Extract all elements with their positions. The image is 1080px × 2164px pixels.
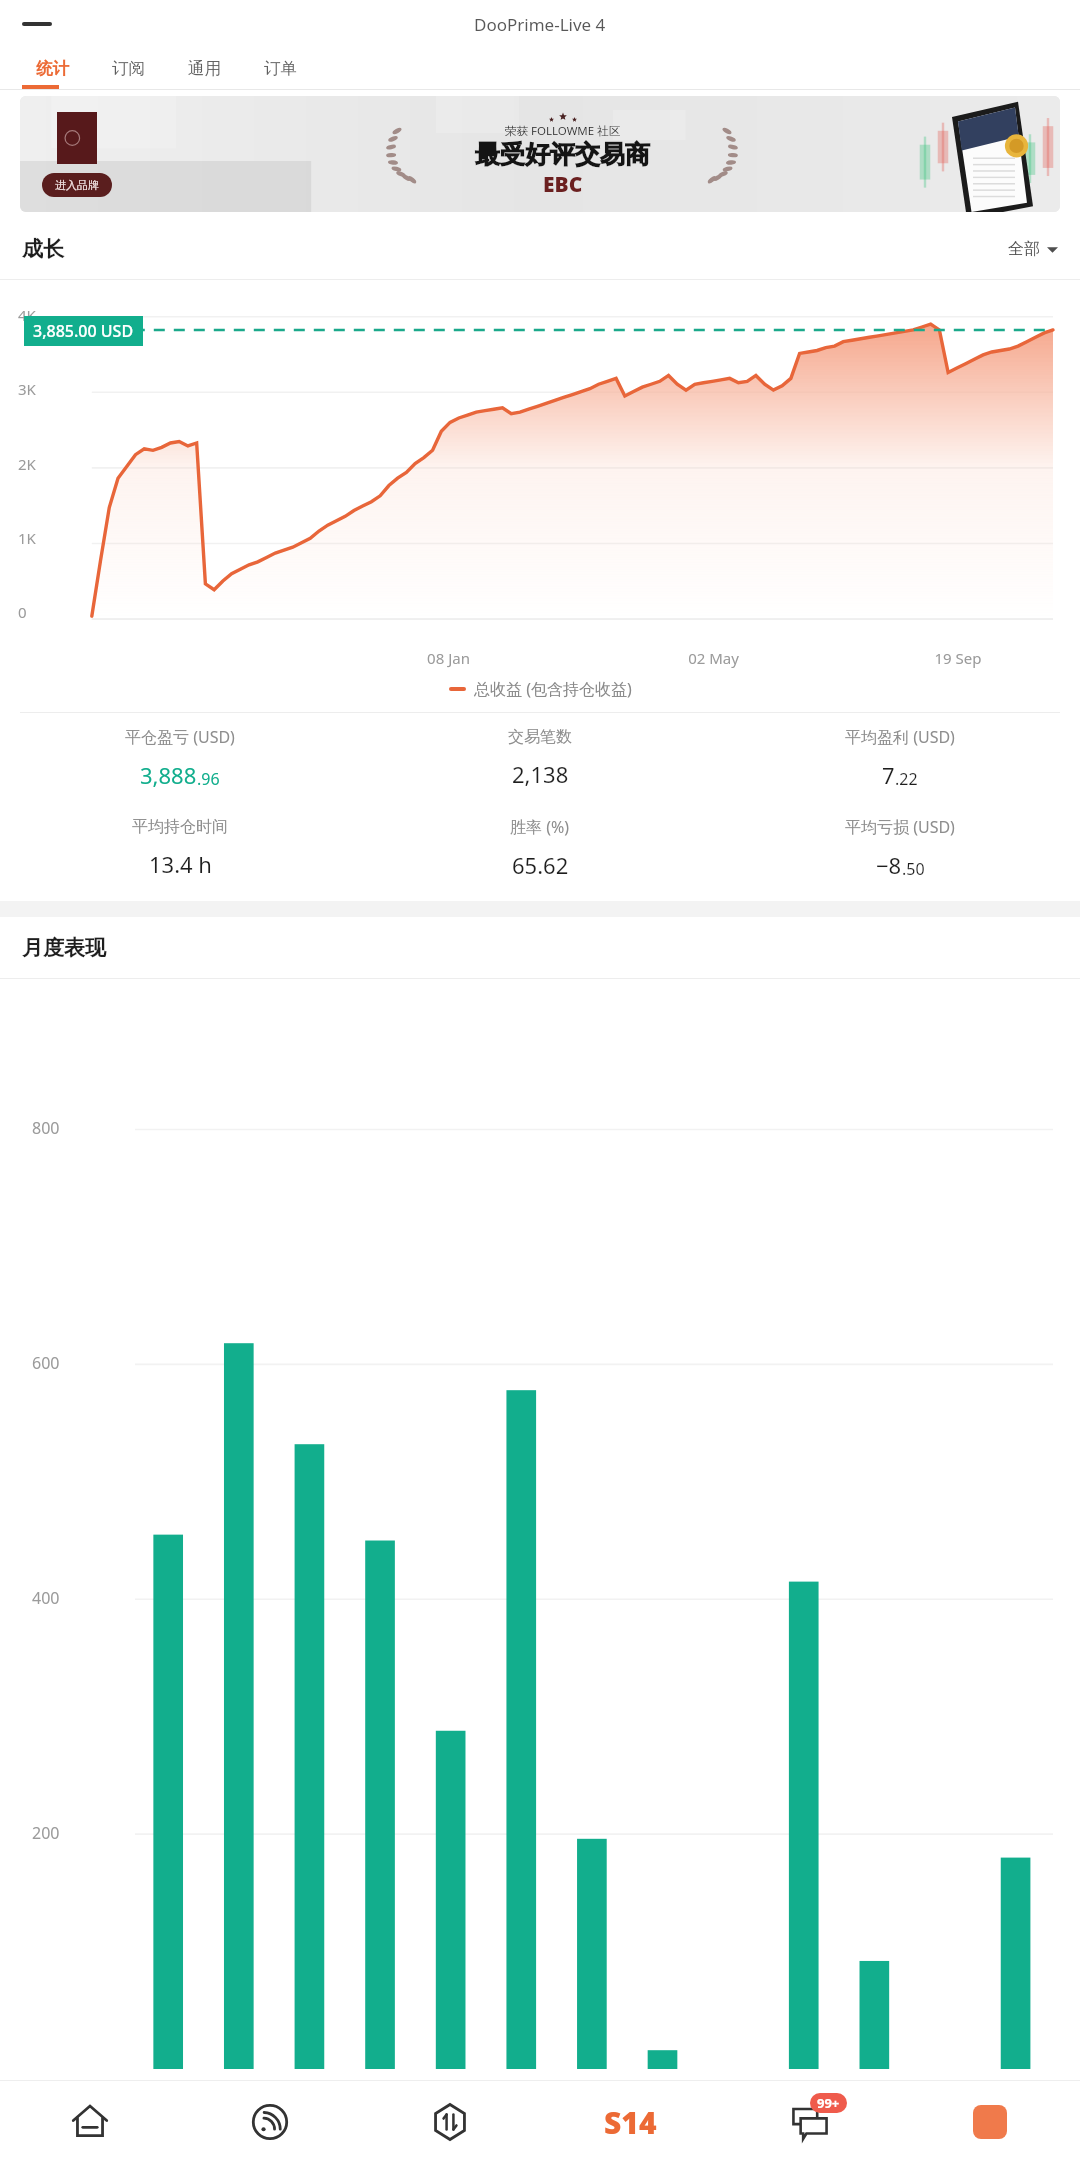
staticText: 65.62 <box>512 850 569 880</box>
button[interactable]: Signals <box>180 2080 360 2164</box>
staticText: 胜率 (%) <box>510 816 570 838</box>
staticText: 平均亏损 (USD) <box>845 816 955 838</box>
staticText: 2,138 <box>512 759 569 789</box>
staticText: 3,885.00 USD <box>33 320 134 342</box>
staticText: 平均持仓时间 <box>132 817 228 837</box>
staticText: 200 <box>32 1822 60 1844</box>
staticText: 交易笔数 <box>508 727 572 747</box>
staticText: 19 Sep <box>846 648 1070 668</box>
staticText: 02 May <box>581 648 846 668</box>
staticText: 订单 <box>264 58 297 79</box>
staticText: 订阅 <box>112 58 145 79</box>
button[interactable]: 订阅 <box>90 48 166 89</box>
staticText: 荣获 FOLLOWME 社区 <box>505 123 621 139</box>
staticText: 月度表现 <box>22 935 106 961</box>
staticText: 通用 <box>188 58 221 79</box>
button[interactable]: Home <box>0 2080 180 2164</box>
staticText: 800 <box>32 1117 60 1139</box>
staticText: 0 <box>18 602 27 622</box>
staticText: 全部 <box>1008 239 1040 259</box>
staticText: 99+ <box>817 2094 840 2112</box>
button[interactable]: 通用 <box>166 48 242 89</box>
staticText: 3,888 <box>140 760 197 790</box>
button[interactable]: Minimize <box>16 16 58 32</box>
button[interactable]: S14 <box>540 2080 720 2164</box>
staticText: −8 <box>876 850 902 880</box>
staticText: 400 <box>32 1587 60 1609</box>
staticText: EBC <box>543 170 583 199</box>
staticText: DooPrime-Live 4 <box>474 13 606 36</box>
staticText: 平均盈利 (USD) <box>845 726 955 748</box>
button[interactable]: 订单 <box>242 48 318 89</box>
staticText: 3K <box>18 379 36 399</box>
staticText: .22 <box>895 768 918 790</box>
staticText: 统计 <box>36 58 69 79</box>
button[interactable]: 全部 <box>1004 235 1062 263</box>
button[interactable]: 进入品牌 <box>20 96 1060 212</box>
staticText: 600 <box>32 1352 60 1374</box>
staticText: 进入品牌 <box>55 178 99 192</box>
staticText: 成长 <box>22 236 64 262</box>
staticText: 平仓盈亏 (USD) <box>125 726 235 748</box>
button[interactable]: 进入品牌 <box>42 173 112 197</box>
staticText: 1K <box>18 528 36 548</box>
button[interactable]: Trade <box>360 2080 540 2164</box>
staticText: .96 <box>197 768 220 790</box>
staticText: .50 <box>902 858 925 880</box>
staticText: 总收益 (包含持仓收益) <box>474 678 632 700</box>
staticText: 08 Jan <box>316 648 581 668</box>
staticText: 2K <box>18 454 36 474</box>
button[interactable]: Messages <box>720 2080 900 2164</box>
staticText: 最受好评交易商 <box>475 139 650 170</box>
staticText: 7 <box>882 760 895 790</box>
button[interactable]: Profile <box>900 2080 1080 2164</box>
button[interactable]: 统计 <box>14 48 90 89</box>
staticText: 13.4 h <box>149 849 212 879</box>
staticText: 4K <box>18 305 36 325</box>
staticText: S14 <box>604 2102 657 2143</box>
